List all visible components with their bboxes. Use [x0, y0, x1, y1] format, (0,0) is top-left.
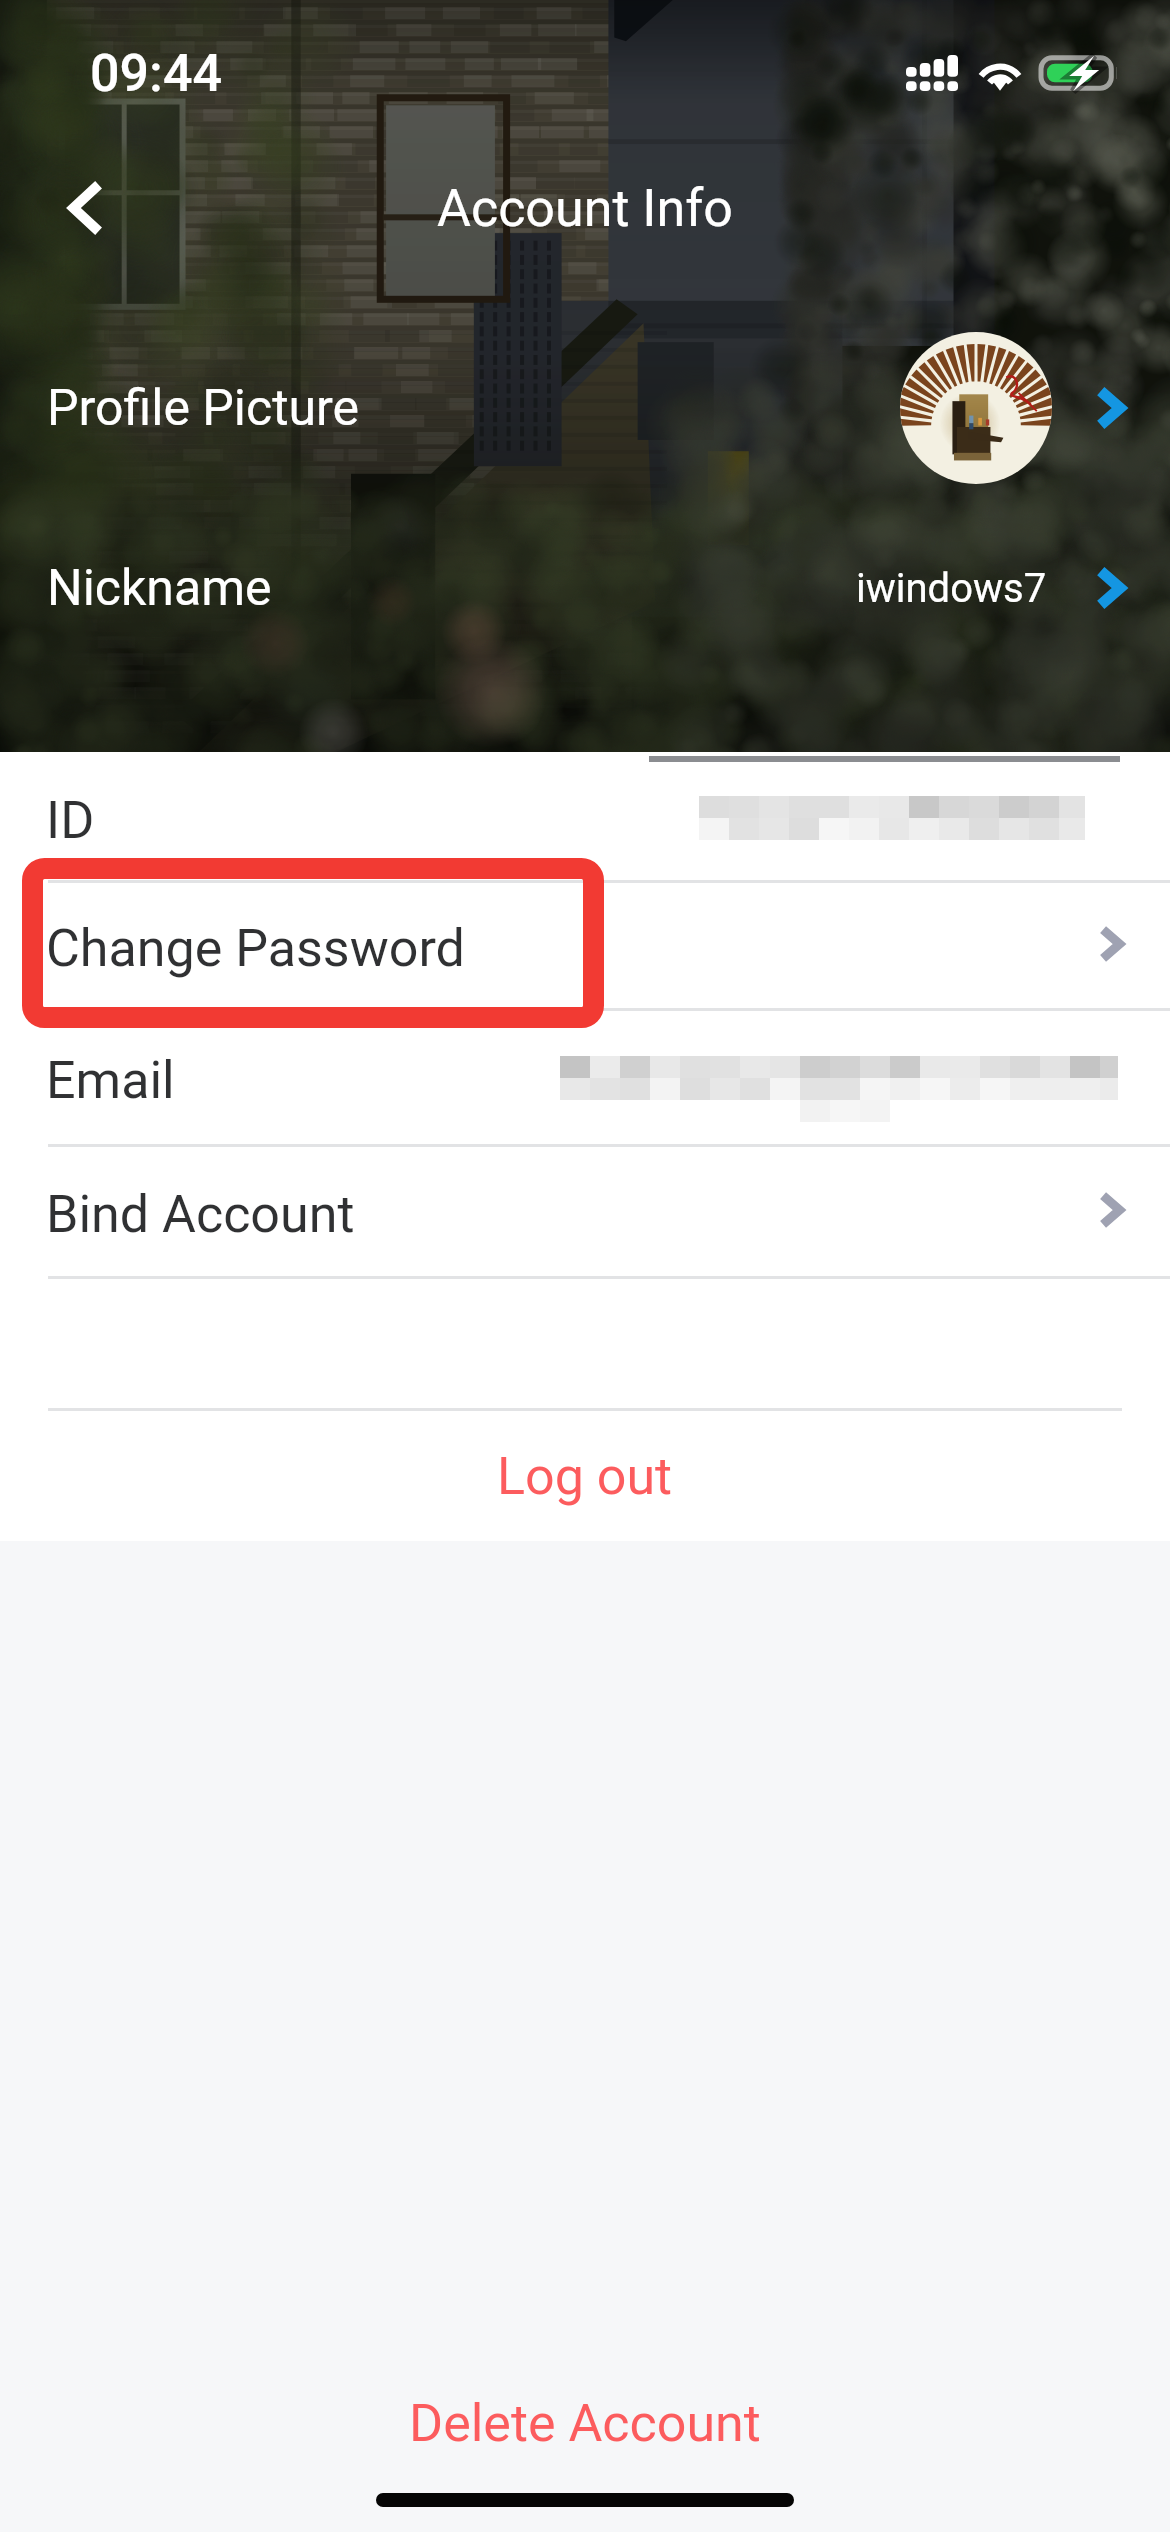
staticText: Change Password	[46, 918, 465, 979]
button[interactable]: ID	[0, 752, 1170, 880]
button[interactable]: Log out	[0, 1408, 1170, 1541]
button[interactable]: Change Password	[0, 880, 1170, 1008]
button[interactable]: Email	[0, 1008, 1170, 1144]
staticText: ID	[46, 790, 95, 851]
staticText: Log out	[497, 1446, 673, 1507]
staticText: Delete Account	[409, 2393, 761, 2454]
staticText: Bind Account	[46, 1184, 355, 1245]
button[interactable]: Delete Account	[0, 2361, 1170, 2493]
staticText: Profile Picture	[47, 379, 360, 438]
button[interactable]: Bind Account	[0, 1144, 1170, 1276]
button[interactable]: Nickname	[0, 513, 1170, 663]
staticText: iwindows7	[856, 565, 1047, 612]
button[interactable]: Profile Picture	[0, 323, 1170, 493]
staticText: Nickname	[47, 559, 272, 618]
button[interactable]: Back	[36, 158, 136, 258]
staticText: Email	[46, 1050, 175, 1111]
staticText: 09:44	[90, 43, 223, 104]
staticText: Account Info	[437, 178, 733, 239]
